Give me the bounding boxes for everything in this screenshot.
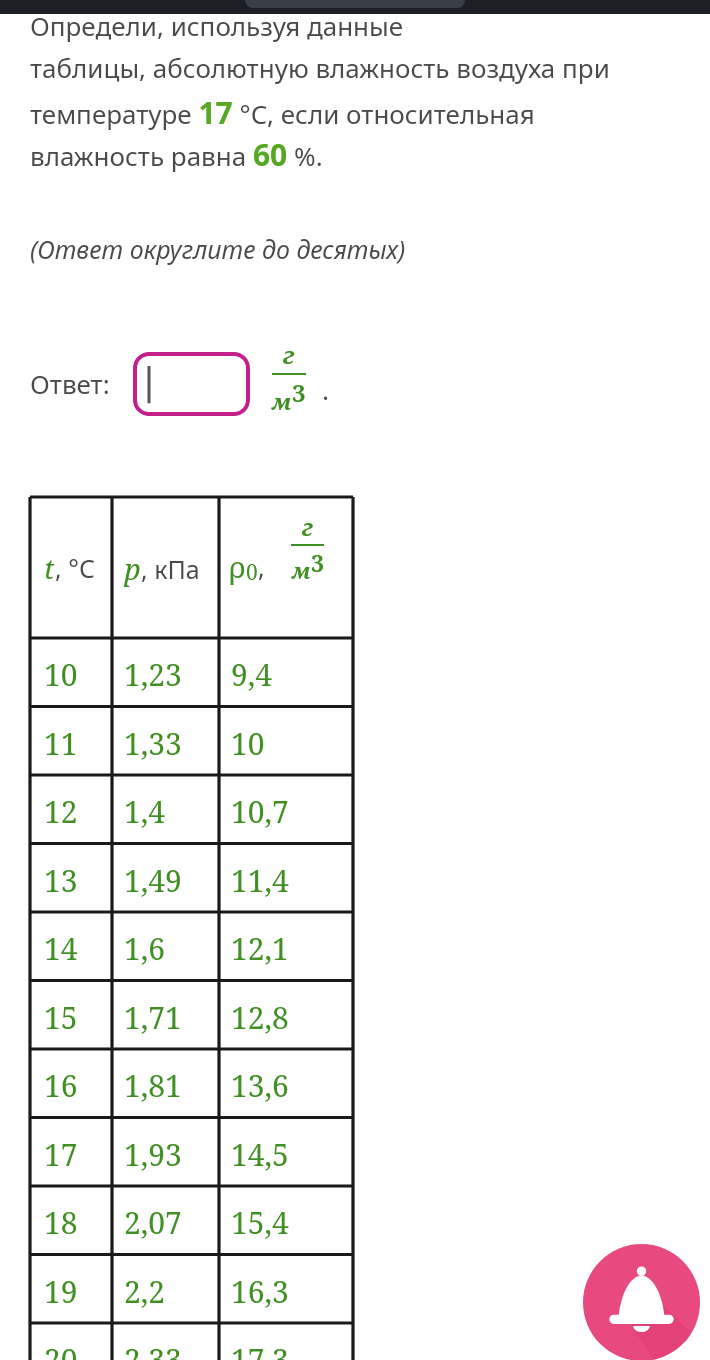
- staticText: температуре 17 °C, если относительная: [30, 92, 535, 133]
- staticText: м: [272, 386, 292, 416]
- staticText: 15,4: [231, 1202, 289, 1243]
- staticText: 20: [44, 1339, 78, 1360]
- staticText: 13: [44, 860, 78, 901]
- staticText: 11,4: [231, 860, 289, 901]
- staticText: 10: [231, 723, 265, 764]
- staticText: 17: [44, 1134, 78, 1175]
- staticText: 2,2: [124, 1271, 166, 1312]
- staticText: 14,5: [231, 1134, 289, 1175]
- staticText: г: [283, 338, 295, 371]
- staticText: 1,4: [124, 791, 166, 832]
- staticText: влажность равна 60 %.: [30, 134, 323, 175]
- staticText: 13,6: [231, 1065, 289, 1106]
- staticText: 1,23: [124, 654, 182, 695]
- staticText: ,: [258, 550, 265, 584]
- staticText: 14: [44, 928, 78, 969]
- staticText: 18: [44, 1202, 78, 1243]
- staticText: .: [322, 372, 329, 407]
- staticText: 17,3: [231, 1339, 289, 1360]
- staticText: 16: [44, 1065, 78, 1106]
- staticText: 3: [292, 376, 306, 409]
- staticText: (Ответ округлите до десятых): [30, 232, 406, 266]
- staticText: 1,93: [124, 1134, 182, 1175]
- staticText: 1,81: [124, 1065, 182, 1106]
- staticText: 12,8: [231, 997, 289, 1038]
- staticText: 10,7: [231, 791, 289, 832]
- staticText: t: [44, 549, 55, 587]
- staticText: 1,71: [124, 997, 182, 1038]
- staticText: 15: [44, 997, 78, 1038]
- staticText: 11: [44, 723, 78, 764]
- staticText: 16,3: [231, 1271, 289, 1312]
- staticText: 10: [44, 654, 78, 695]
- staticText: 12: [44, 791, 78, 832]
- staticText: м: [292, 557, 311, 586]
- staticText: ρ: [229, 547, 246, 586]
- staticText: 3: [311, 547, 324, 578]
- staticText: 0: [246, 558, 258, 587]
- staticText: г: [302, 511, 314, 542]
- staticText: 2,07: [124, 1202, 182, 1243]
- staticText: Определи, используя данные: [30, 8, 404, 43]
- staticText: Ответ:: [30, 366, 110, 401]
- staticText: 1,6: [124, 928, 166, 969]
- staticText: p: [124, 549, 141, 588]
- staticText: таблицы, абсолютную влажность воздуха пр…: [30, 50, 610, 85]
- staticText: , °C: [55, 551, 95, 585]
- staticText: 12,1: [231, 928, 289, 969]
- staticText: 1,33: [124, 723, 182, 764]
- button[interactable]: [133, 352, 250, 416]
- staticText: 19: [44, 1271, 78, 1312]
- button[interactable]: Notifications: [583, 1244, 700, 1360]
- staticText: 1,49: [124, 860, 182, 901]
- staticText: 2,33: [124, 1339, 182, 1360]
- staticText: 9,4: [231, 654, 273, 695]
- staticText: , кПа: [141, 552, 200, 586]
